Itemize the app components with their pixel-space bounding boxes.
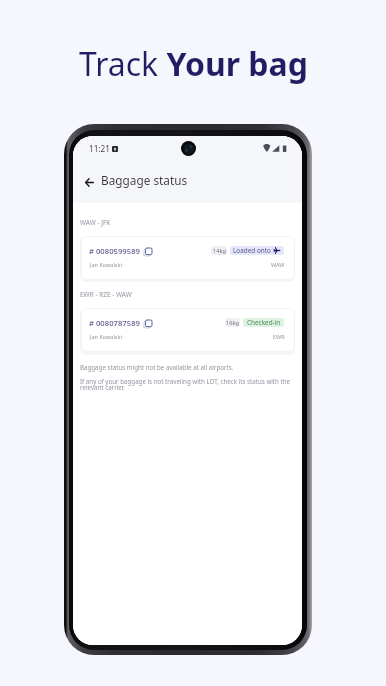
staticText: EWR - RZE - WAW [80, 290, 132, 299]
staticText: # 0080787589 [89, 318, 140, 328]
staticText: 11:21 [89, 143, 110, 154]
staticText: 14kg [213, 247, 226, 255]
staticText: EWR [273, 333, 285, 340]
staticText: 16kg [226, 319, 239, 327]
staticText: # 0080599589 [89, 246, 140, 256]
button[interactable]: Back [78, 172, 100, 193]
button[interactable]: Copy baggage number [141, 245, 155, 259]
staticText: WAW - JFK [80, 218, 111, 227]
button[interactable]: Loaded onto [230, 246, 284, 255]
staticText: Baggage status might not be available at… [80, 363, 234, 371]
staticText: WAW [271, 261, 285, 268]
staticText: Checked-in [247, 318, 281, 327]
button[interactable]: # 0080787589 [81, 308, 295, 352]
staticText: Baggage status [101, 172, 188, 188]
staticText: Loaded onto [233, 246, 271, 255]
button[interactable]: # 0080599589 [81, 236, 295, 280]
staticText: Jan Kowalski [90, 261, 122, 268]
staticText: Track Your bag [79, 42, 308, 86]
staticText: Jan Kowalski [90, 333, 122, 340]
staticText: If any of your baggage is not traveling … [80, 377, 293, 392]
button[interactable]: Copy baggage number [141, 317, 155, 331]
button[interactable]: Checked-in [243, 318, 284, 327]
